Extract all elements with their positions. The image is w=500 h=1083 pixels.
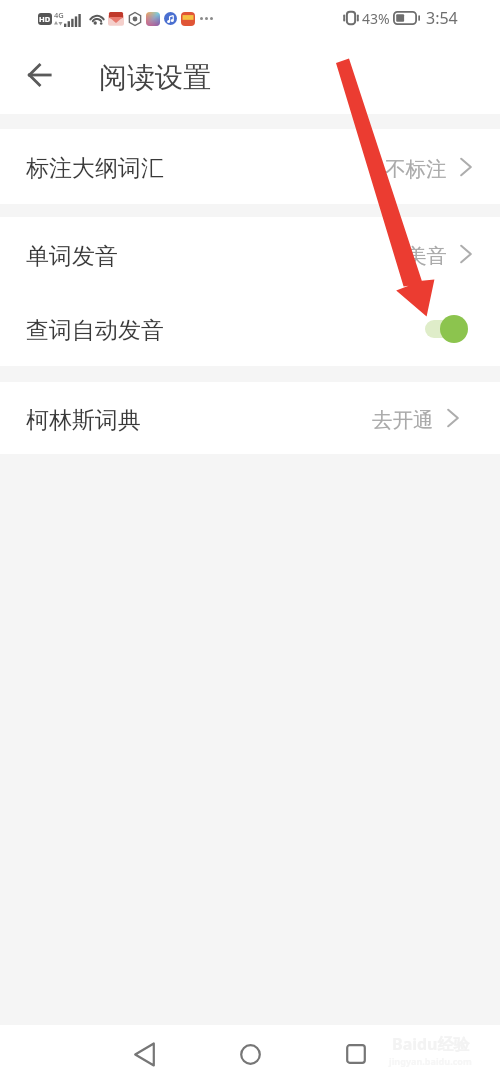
staticText: 标注大纲词汇 (26, 154, 164, 183)
staticText: Baidu经验 (392, 1033, 470, 1055)
button[interactable]: 单词发音 (0, 217, 500, 291)
staticText: 单词发音 (26, 242, 118, 271)
button[interactable]: 柯林斯词典 (0, 382, 500, 454)
button[interactable]: 标注大纲词汇 (0, 129, 500, 204)
button[interactable]: 查词自动发音 (0, 291, 500, 366)
button[interactable]: Home (226, 1030, 274, 1078)
staticText: 阅读设置 (99, 60, 211, 95)
button[interactable]: Recents (332, 1030, 380, 1078)
staticText: jingyan.baidu.com (389, 1055, 472, 1067)
button[interactable]: Back (120, 1030, 168, 1078)
staticText: HD (39, 14, 51, 24)
staticText: 3:54 (426, 7, 458, 29)
staticText: 美音 (406, 243, 447, 269)
staticText: 不标注 (385, 156, 447, 182)
staticText: 查词自动发音 (26, 316, 164, 345)
staticText: 43% (362, 9, 390, 28)
staticText: 柯林斯词典 (26, 406, 141, 435)
staticText: 去开通 (372, 407, 434, 433)
staticText: 4G (54, 10, 64, 20)
button[interactable]: Back (19, 51, 59, 99)
